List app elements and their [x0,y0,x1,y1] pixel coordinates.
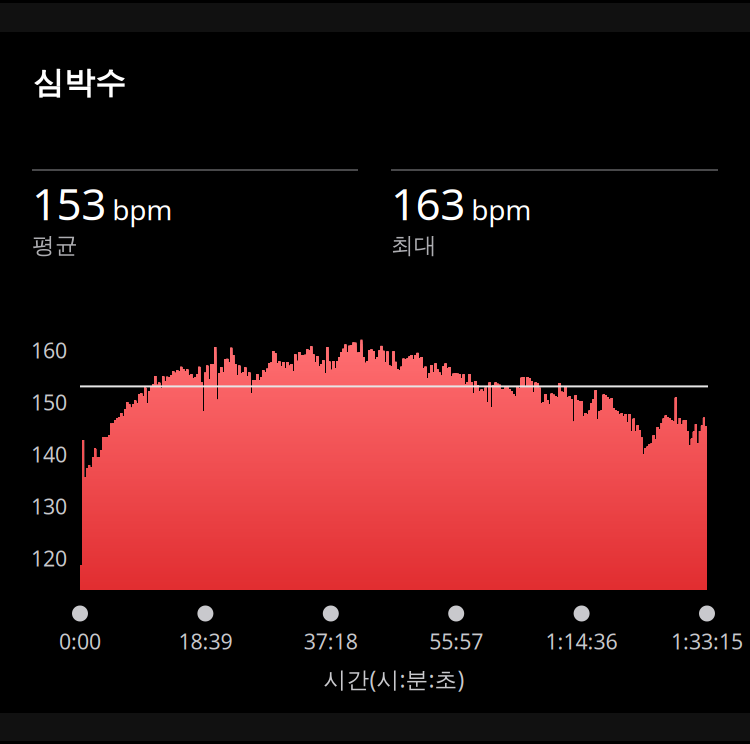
staticText: 18:39 [178,627,232,655]
staticText: 55:57 [429,627,483,655]
staticText: bpm [112,191,172,228]
staticText: 120 [31,544,67,572]
staticText: 140 [31,440,67,468]
staticText: 163 [391,174,465,232]
staticText: 1:33:15 [671,627,743,655]
staticText: 37:18 [304,627,358,655]
staticText: 심박수 [33,64,126,102]
staticText: 150 [31,388,67,416]
staticText: 시간(시:분:초) [323,664,464,694]
staticText: 최대 [391,231,437,259]
staticText: 평균 [32,231,78,259]
staticText: 0:00 [59,627,101,655]
staticText: 160 [31,336,67,364]
staticText: bpm [471,191,531,228]
staticText: 130 [31,492,67,520]
staticText: 153 [32,174,106,232]
staticText: 1:14:36 [546,627,618,655]
